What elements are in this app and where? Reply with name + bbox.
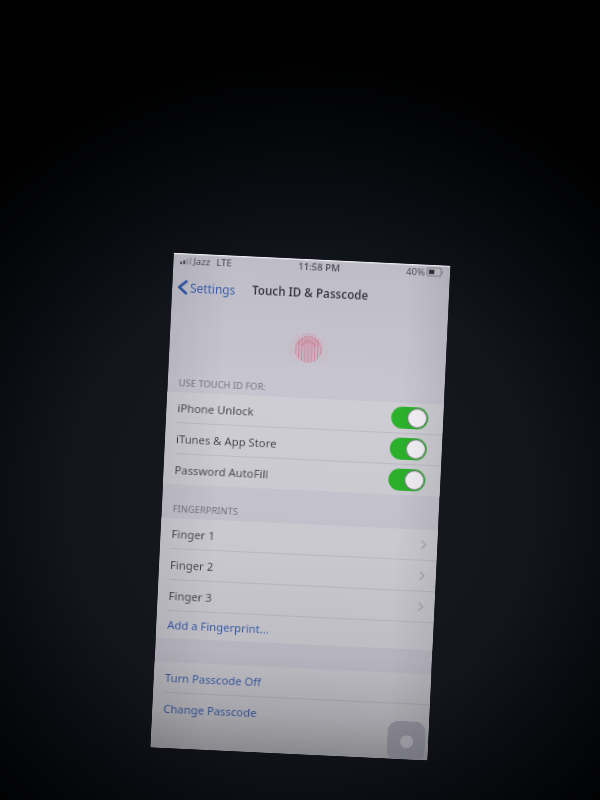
staticText: LTE [216, 256, 233, 269]
button[interactable]: Finger 2 [169, 549, 426, 591]
staticText: Touch ID & Passcode [252, 282, 369, 304]
button[interactable]: AssistiveTouch [386, 720, 426, 760]
button[interactable]: Change Passcode [163, 693, 430, 735]
staticText: Settings [190, 280, 236, 298]
staticText: Finger 3 [168, 588, 213, 605]
staticText: Turn Passcode Off [164, 670, 262, 689]
staticText: 40% [406, 265, 425, 279]
button[interactable]: Turn Passcode Off [164, 662, 431, 704]
button[interactable]: Password AutoFill [174, 454, 426, 496]
staticText: FINGERPRINTS [172, 502, 239, 518]
staticText: Change Passcode [163, 701, 258, 720]
staticText: USE TOUCH ID FOR: [178, 376, 267, 393]
button[interactable]: iPhone Unlock [177, 392, 429, 434]
staticText: 11:58 PM [298, 260, 341, 275]
button[interactable]: iTunes & App Store [175, 423, 427, 465]
button[interactable]: Finger 1 [171, 518, 427, 560]
staticText: Finger 1 [171, 526, 216, 543]
button[interactable]: Finger 3 [168, 580, 424, 622]
staticText: Password AutoFill [174, 462, 269, 481]
staticText: iPhone Unlock [177, 400, 255, 419]
button[interactable]: Settings [171, 272, 241, 305]
button[interactable]: Add a Fingerprint... [167, 611, 434, 650]
staticText: Finger 2 [170, 557, 214, 574]
staticText: Add a Fingerprint... [167, 617, 270, 637]
staticText: iTunes & App Store [176, 431, 277, 451]
staticText: Jazz [193, 255, 212, 268]
